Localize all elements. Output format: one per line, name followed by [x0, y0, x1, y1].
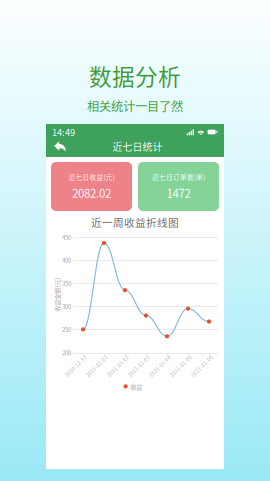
staticText: 相关统计一目了然: [87, 97, 183, 115]
staticText: 400: [62, 256, 71, 265]
staticText: 近七日订单数(单): [152, 172, 205, 182]
staticText: 2082.02: [72, 184, 111, 201]
button[interactable]: 近七日订单数(单): [138, 162, 219, 211]
staticText: 2020-12-31: [62, 363, 90, 369]
staticText: 数据分析: [89, 59, 181, 92]
staticText: 近七日收益(元): [68, 172, 114, 182]
staticText: 2021-01-03: [125, 363, 153, 369]
staticText: 近七日统计: [112, 139, 162, 154]
staticText: 1472: [166, 184, 190, 201]
button[interactable]: 近七日收益(元): [51, 162, 132, 211]
staticText: 近一周收益折线图: [91, 214, 179, 230]
staticText: 14:49: [52, 125, 75, 139]
staticText: 350: [62, 279, 71, 288]
staticText: 300: [62, 302, 71, 311]
staticText: 250: [62, 325, 71, 334]
staticText: 收益: [130, 382, 142, 391]
button[interactable]: Back: [49, 137, 71, 156]
staticText: 收益金额(元): [40, 290, 74, 299]
staticText: 2021-01-01: [83, 363, 111, 369]
staticText: 200: [62, 348, 71, 357]
staticText: 2021-01-04: [146, 363, 174, 369]
staticText: 2021-01-02: [104, 363, 132, 369]
staticText: 2021-01-06: [188, 363, 216, 369]
staticText: 2021-01-05: [167, 363, 195, 369]
staticText: 450: [62, 233, 71, 241]
